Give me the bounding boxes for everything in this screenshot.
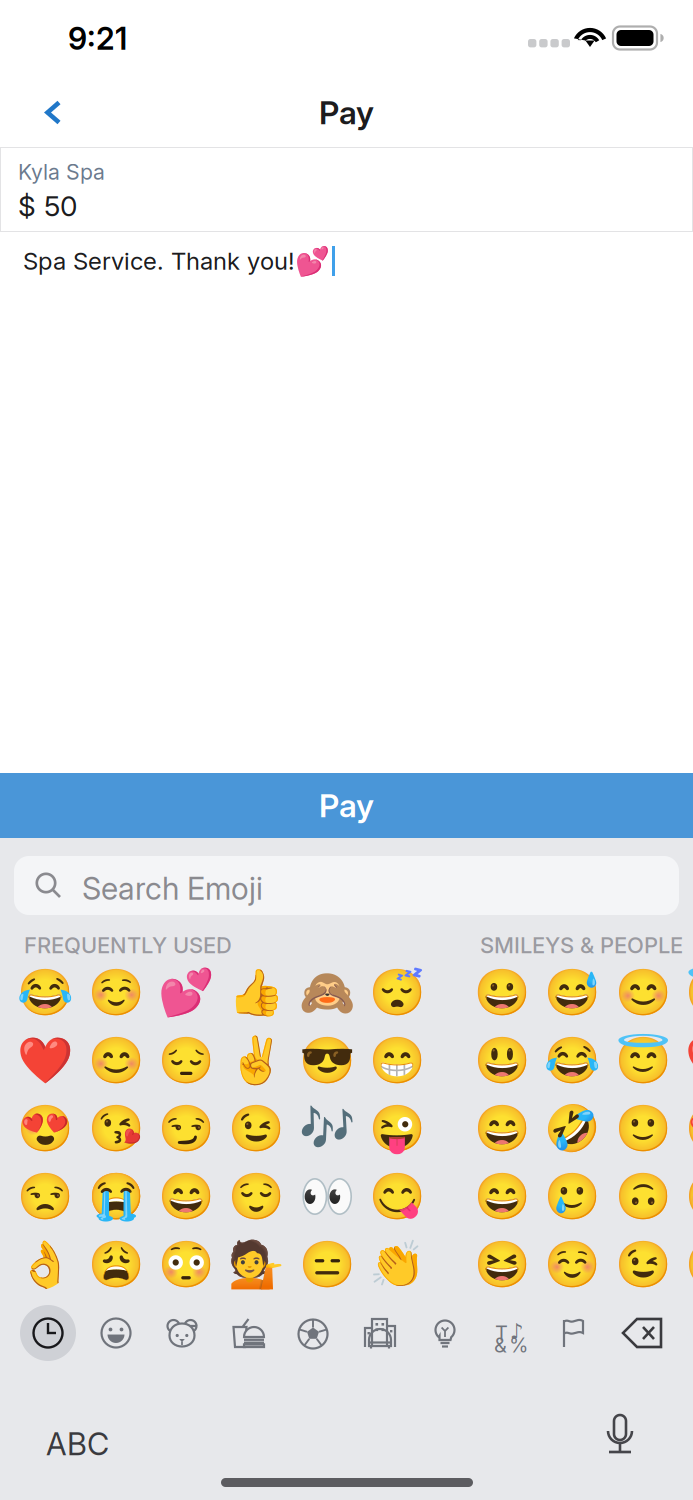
staticText: 😳 <box>158 1238 214 1291</box>
button[interactable]: 🙃 <box>608 1163 678 1231</box>
button[interactable]: Symbols <box>483 1308 535 1358</box>
button[interactable]: 😇 <box>608 1027 678 1095</box>
button[interactable]: 😊 <box>80 1027 151 1095</box>
staticText: 💁 <box>228 1238 284 1291</box>
button[interactable]: 😏 <box>151 1095 221 1163</box>
button[interactable]: 😇 <box>678 959 693 1027</box>
button[interactable]: ABC <box>46 1418 138 1470</box>
staticText: 😩 <box>88 1238 144 1291</box>
button[interactable]: Smileys and people <box>91 1308 141 1358</box>
staticText: Pay <box>319 93 374 132</box>
button[interactable]: 😒 <box>10 1163 80 1231</box>
button[interactable]: 😆 <box>467 1231 537 1299</box>
button[interactable]: ❤️ <box>678 1027 693 1095</box>
button[interactable]: 👏 <box>362 1231 432 1299</box>
button[interactable]: ✌️ <box>221 1027 292 1095</box>
button[interactable]: 👀 <box>292 1163 362 1231</box>
button[interactable]: 😳 <box>151 1231 221 1299</box>
button[interactable]: 😩 <box>80 1231 151 1299</box>
button[interactable]: Flags <box>550 1308 596 1358</box>
staticText: ❤️ <box>17 1034 73 1087</box>
staticText: 😜 <box>369 1102 425 1155</box>
staticText: Spa Service. Thank you! <box>23 246 295 275</box>
button[interactable]: Animals and nature <box>156 1308 208 1358</box>
button[interactable]: Travel and places <box>353 1308 407 1358</box>
button[interactable]: 😀 <box>467 959 537 1027</box>
staticText: 😄 <box>158 1170 214 1223</box>
staticText: & <box>494 1333 507 1357</box>
staticText: ABC <box>46 1425 109 1462</box>
button[interactable]: 😍 <box>678 1095 693 1163</box>
button[interactable]: Frequently used <box>20 1305 76 1361</box>
button[interactable]: 😃 <box>467 1027 537 1095</box>
staticText: 😇 <box>615 1034 671 1087</box>
staticText: 😂 <box>17 966 73 1019</box>
button[interactable]: ☺️ <box>80 959 151 1027</box>
button[interactable]: Search Emoji <box>14 856 679 915</box>
staticText: 😏 <box>158 1102 214 1155</box>
button[interactable]: 💁 <box>221 1231 292 1299</box>
button[interactable]: 🥲 <box>537 1163 608 1231</box>
button[interactable]: Pay <box>0 773 693 838</box>
staticText: 😉 <box>615 1238 671 1291</box>
button[interactable]: 😌 <box>221 1163 292 1231</box>
button[interactable]: Activity <box>288 1308 338 1358</box>
staticText: 😋 <box>369 1170 425 1223</box>
staticText: 🙈 <box>299 966 355 1019</box>
button[interactable]: 🎶 <box>292 1095 362 1163</box>
button[interactable]: 😑 <box>292 1231 362 1299</box>
button[interactable]: 😘 <box>80 1095 151 1163</box>
button[interactable]: 😴 <box>362 959 432 1027</box>
staticText: 😊 <box>615 966 671 1019</box>
staticText: 😎 <box>299 1034 355 1087</box>
button[interactable]: ❤️ <box>10 1027 80 1095</box>
staticText: 😇 <box>685 966 693 1019</box>
button[interactable]: 🤣 <box>537 1095 608 1163</box>
button[interactable]: 😉 <box>608 1231 678 1299</box>
staticText: 😋 <box>685 1238 693 1291</box>
button[interactable]: Back <box>0 79 86 145</box>
button[interactable]: Delete <box>611 1315 667 1351</box>
button[interactable]: Objects <box>422 1308 468 1358</box>
staticText: 😍 <box>685 1102 693 1155</box>
button[interactable]: 😋 <box>678 1231 693 1299</box>
button[interactable]: 😍 <box>10 1095 80 1163</box>
button[interactable]: 😔 <box>151 1027 221 1095</box>
staticText: ☺️ <box>88 966 144 1019</box>
button[interactable]: 👍 <box>221 959 292 1027</box>
button[interactable]: Food and drink <box>223 1308 273 1358</box>
staticText: SMILEYS & PEOPLE <box>480 932 683 959</box>
staticText: 🎶 <box>299 1102 355 1155</box>
staticText: 👏 <box>369 1238 425 1291</box>
staticText: ❤️ <box>685 1034 693 1087</box>
button[interactable]: 😂 <box>537 1027 608 1095</box>
button[interactable]: ☺️ <box>537 1231 608 1299</box>
button[interactable]: 😊 <box>608 959 678 1027</box>
button[interactable]: 😄 <box>467 1095 537 1163</box>
button[interactable]: 😄 <box>467 1163 537 1231</box>
staticText: ♪ <box>510 1319 524 1344</box>
staticText: 👀 <box>299 1170 355 1223</box>
button[interactable]: 😄 <box>151 1163 221 1231</box>
button[interactable]: 🙂 <box>608 1095 678 1163</box>
button[interactable]: Dictation <box>603 1412 637 1462</box>
button[interactable]: 👌 <box>10 1231 80 1299</box>
button[interactable]: 😂 <box>10 959 80 1027</box>
staticText: 🥲 <box>544 1170 600 1223</box>
button[interactable]: 😊 <box>678 1163 693 1231</box>
button[interactable]: 😉 <box>221 1095 292 1163</box>
button[interactable]: 😎 <box>292 1027 362 1095</box>
staticText: 😀 <box>474 966 530 1019</box>
staticText: ✌️ <box>228 1034 284 1087</box>
button[interactable]: 😋 <box>362 1163 432 1231</box>
button[interactable]: 😜 <box>362 1095 432 1163</box>
staticText: 😅 <box>544 966 600 1019</box>
staticText: T <box>495 1321 508 1345</box>
button[interactable]: 😅 <box>537 959 608 1027</box>
button[interactable]: 😁 <box>362 1027 432 1095</box>
button[interactable]: 💕 <box>151 959 221 1027</box>
staticText: 😒 <box>17 1170 73 1223</box>
staticText: 👌 <box>17 1238 73 1291</box>
button[interactable]: 😭 <box>80 1163 151 1231</box>
button[interactable]: 🙈 <box>292 959 362 1027</box>
